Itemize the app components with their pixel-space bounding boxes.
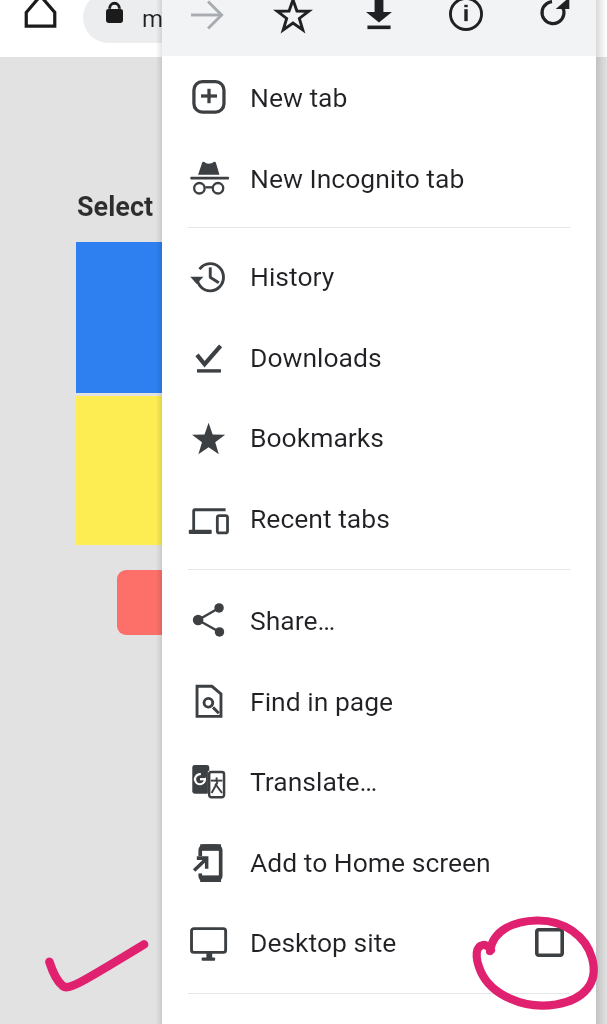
button[interactable]: Downloads (162, 317, 596, 398)
staticText: Find in page (250, 686, 394, 717)
button[interactable]: Share… (162, 580, 596, 661)
staticText: Translate… (250, 766, 378, 797)
button[interactable]: Bookmark this page (265, 0, 321, 43)
staticText: History (250, 261, 335, 292)
staticText: Share… (250, 605, 336, 636)
button[interactable]: Bookmarks (162, 397, 596, 478)
button[interactable]: Forward (178, 0, 234, 43)
button[interactable]: New Incognito tab (162, 138, 596, 219)
staticText: New Incognito tab (250, 163, 465, 194)
button[interactable]: New tab (162, 57, 596, 138)
button[interactable]: Recent tabs (162, 478, 596, 559)
staticText: Desktop site (250, 927, 397, 958)
button[interactable]: Download page (351, 0, 407, 43)
button[interactable]: Reload (525, 0, 581, 43)
staticText: Add to Home screen (250, 847, 491, 878)
staticText: m (142, 5, 164, 33)
button[interactable]: Desktop site (162, 902, 596, 983)
staticText: New tab (250, 82, 348, 113)
staticText: Downloads (250, 342, 382, 373)
staticText: Bookmarks (250, 422, 384, 453)
button[interactable]: Add to Home screen (162, 822, 596, 903)
staticText: Recent tabs (250, 503, 390, 534)
button[interactable]: Translate… (162, 741, 596, 822)
button[interactable]: History (162, 236, 596, 317)
button[interactable]: Home (25, 0, 56, 28)
button[interactable]: Find in page (162, 661, 596, 742)
button[interactable]: Page info (438, 0, 494, 43)
staticText: Select (77, 191, 154, 223)
